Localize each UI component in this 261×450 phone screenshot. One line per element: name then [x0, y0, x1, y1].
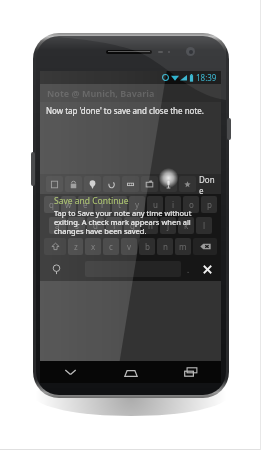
button[interactable]: q: [44, 196, 59, 213]
button[interactable]: o: [183, 196, 199, 213]
button[interactable]: Shift: [44, 238, 66, 255]
staticText: i: [172, 199, 175, 210]
button[interactable]: a: [49, 217, 66, 234]
staticText: e: [83, 199, 88, 210]
button[interactable]: Camera: [141, 176, 158, 192]
staticText: j: [167, 220, 170, 231]
button[interactable]: t: [112, 196, 127, 213]
button[interactable]: c: [103, 238, 119, 255]
staticText: c: [109, 241, 113, 252]
button[interactable]: Favourite: [179, 176, 196, 192]
staticText: 18:39: [196, 72, 217, 83]
button[interactable]: w: [61, 196, 76, 213]
button[interactable]: Location: [84, 176, 101, 192]
button[interactable]: d: [87, 217, 104, 234]
staticText: k: [184, 220, 189, 231]
staticText: w: [65, 199, 72, 210]
button[interactable]: v: [121, 238, 137, 255]
staticText: Done: [199, 174, 217, 194]
button[interactable]: m: [175, 238, 191, 255]
button[interactable]: p: [201, 196, 217, 213]
button[interactable]: j: [160, 217, 176, 234]
button[interactable]: Voice note: [122, 176, 139, 192]
staticText: t: [118, 199, 121, 210]
button[interactable]: r: [95, 196, 110, 213]
button[interactable]: Hide keyboard: [40, 361, 101, 383]
button[interactable]: Backspace: [193, 238, 217, 255]
staticText: h: [148, 220, 153, 231]
button[interactable]: z: [68, 238, 83, 255]
staticText: Now tap 'done' to save and close the not…: [46, 105, 204, 116]
staticText: g: [130, 220, 135, 231]
staticText: l: [203, 220, 206, 231]
button[interactable]: h: [142, 217, 158, 234]
staticText: q: [49, 199, 54, 210]
button[interactable]: s: [68, 217, 85, 234]
button[interactable]: Lock: [65, 176, 82, 192]
staticText: x: [91, 241, 96, 252]
staticText: m: [179, 241, 187, 252]
staticText: f: [113, 220, 116, 231]
button[interactable]: y: [129, 196, 145, 213]
staticText: s: [75, 220, 79, 231]
staticText: y: [135, 199, 140, 210]
button[interactable]: Dictate: [160, 176, 177, 192]
button[interactable]: Attach: [103, 176, 120, 192]
staticText: p: [207, 199, 212, 210]
staticText: u: [153, 199, 158, 210]
button[interactable]: Note @ Munich, Bavaria: [40, 84, 221, 102]
button[interactable]: k: [178, 217, 194, 234]
staticText: v: [127, 241, 132, 252]
button[interactable]: u: [147, 196, 163, 213]
button[interactable]: Formatting: [46, 176, 63, 192]
button[interactable]: Space: [85, 261, 181, 277]
staticText: z: [74, 241, 78, 252]
staticText: a: [55, 220, 60, 231]
button[interactable]: l: [196, 217, 212, 234]
button[interactable]: b: [139, 238, 155, 255]
button[interactable]: x: [85, 238, 101, 255]
staticText: n: [163, 241, 168, 252]
button[interactable]: Now tap 'done' to save and close the not…: [40, 102, 221, 118]
staticText: Note @ Munich, Bavaria: [47, 87, 155, 99]
staticText: d: [93, 220, 98, 231]
staticText: Tap to Save your note any time without e…: [54, 208, 203, 236]
staticText: o: [189, 199, 194, 210]
button[interactable]: i: [165, 196, 181, 213]
button[interactable]: Voice input: [43, 260, 69, 278]
staticText: b: [145, 241, 150, 252]
button[interactable]: n: [157, 238, 173, 255]
staticText: r: [101, 199, 105, 210]
staticText: .: [187, 264, 190, 275]
button[interactable]: g: [124, 217, 140, 234]
button[interactable]: f: [106, 217, 122, 234]
button[interactable]: e: [78, 196, 93, 213]
button[interactable]: Recent apps: [161, 361, 221, 383]
button[interactable]: Home: [101, 361, 161, 383]
staticText: Save and Continue: [54, 195, 129, 207]
button[interactable]: Close keyboard: [196, 260, 218, 278]
button[interactable]: Done: [199, 174, 217, 194]
